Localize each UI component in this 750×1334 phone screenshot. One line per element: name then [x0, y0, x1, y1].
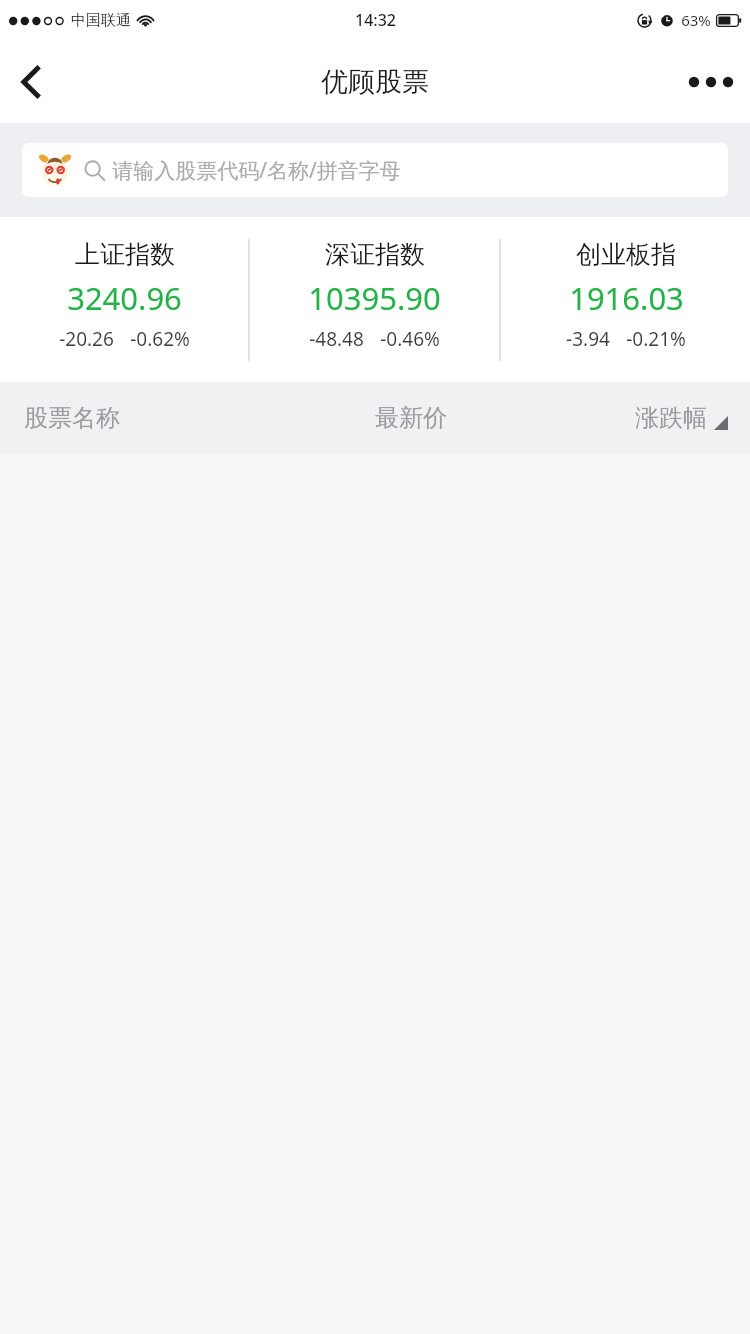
- staticText: 10395.90: [308, 277, 441, 319]
- staticText: 63%: [681, 10, 711, 30]
- staticText: 涨跌幅: [635, 403, 707, 433]
- staticText: 请输入股票代码/名称/拼音字母: [112, 156, 401, 185]
- button[interactable]: 请输入股票代码/名称/拼音字母: [22, 143, 728, 197]
- staticText: -48.48: [309, 326, 364, 352]
- staticText: 3240.96: [67, 277, 182, 319]
- staticText: 1916.03: [569, 277, 684, 319]
- button[interactable]: 创业板指: [501, 217, 750, 382]
- staticText: -0.62%: [130, 326, 190, 352]
- button[interactable]: 最新价: [375, 403, 447, 433]
- staticText: -0.46%: [380, 326, 440, 352]
- staticText: 中国联通: [71, 11, 131, 30]
- button[interactable]: 涨跌幅: [635, 403, 728, 433]
- staticText: 优顾股票: [321, 65, 429, 99]
- button[interactable]: 深证指数: [250, 217, 499, 382]
- button[interactable]: 上证指数: [0, 217, 248, 382]
- button[interactable]: 返回: [0, 51, 62, 113]
- staticText: 股票名称: [24, 403, 120, 433]
- staticText: -0.21%: [626, 326, 686, 352]
- staticText: 最新价: [375, 403, 447, 433]
- staticText: 上证指数: [75, 239, 175, 270]
- staticText: 14:32: [355, 9, 396, 31]
- staticText: 创业板指: [576, 239, 676, 270]
- staticText: -3.94: [566, 326, 610, 352]
- staticText: -20.26: [59, 326, 114, 352]
- button[interactable]: 更多: [672, 51, 750, 113]
- staticText: 深证指数: [325, 239, 425, 270]
- button[interactable]: 股票名称: [24, 403, 120, 433]
